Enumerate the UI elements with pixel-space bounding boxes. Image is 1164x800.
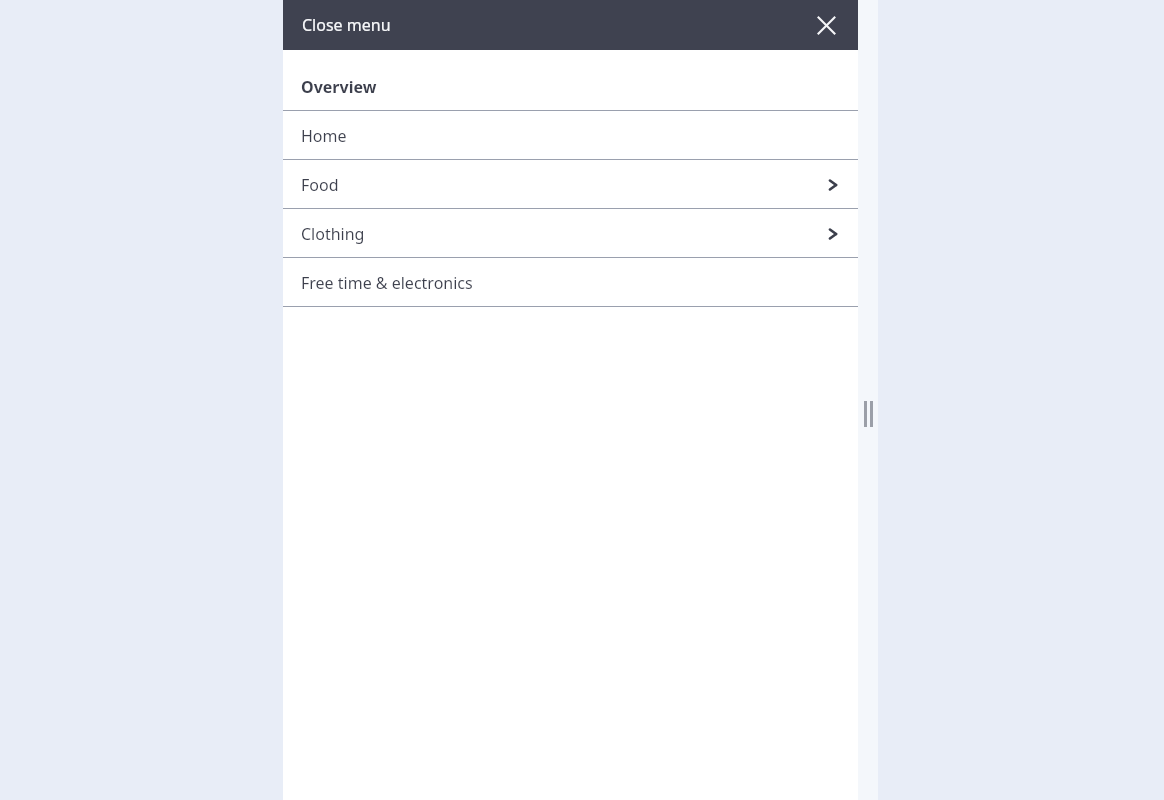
button[interactable]: Close menu — [811, 10, 841, 40]
staticText: Clothing — [301, 223, 365, 245]
staticText: Close menu — [302, 14, 391, 36]
staticText: Home — [301, 125, 347, 147]
staticText: Food — [301, 174, 339, 196]
staticText: Free time & electronics — [301, 272, 473, 294]
button[interactable]: Free time & electronics — [283, 258, 858, 307]
button[interactable]: Close menu — [283, 0, 858, 50]
staticText: Overview — [301, 76, 377, 98]
button[interactable]: Clothing — [283, 209, 858, 258]
button[interactable]: Home — [283, 111, 858, 160]
button[interactable]: Overview — [283, 62, 858, 111]
button[interactable]: Food — [283, 160, 858, 209]
button[interactable]: Resize menu — [858, 0, 878, 800]
